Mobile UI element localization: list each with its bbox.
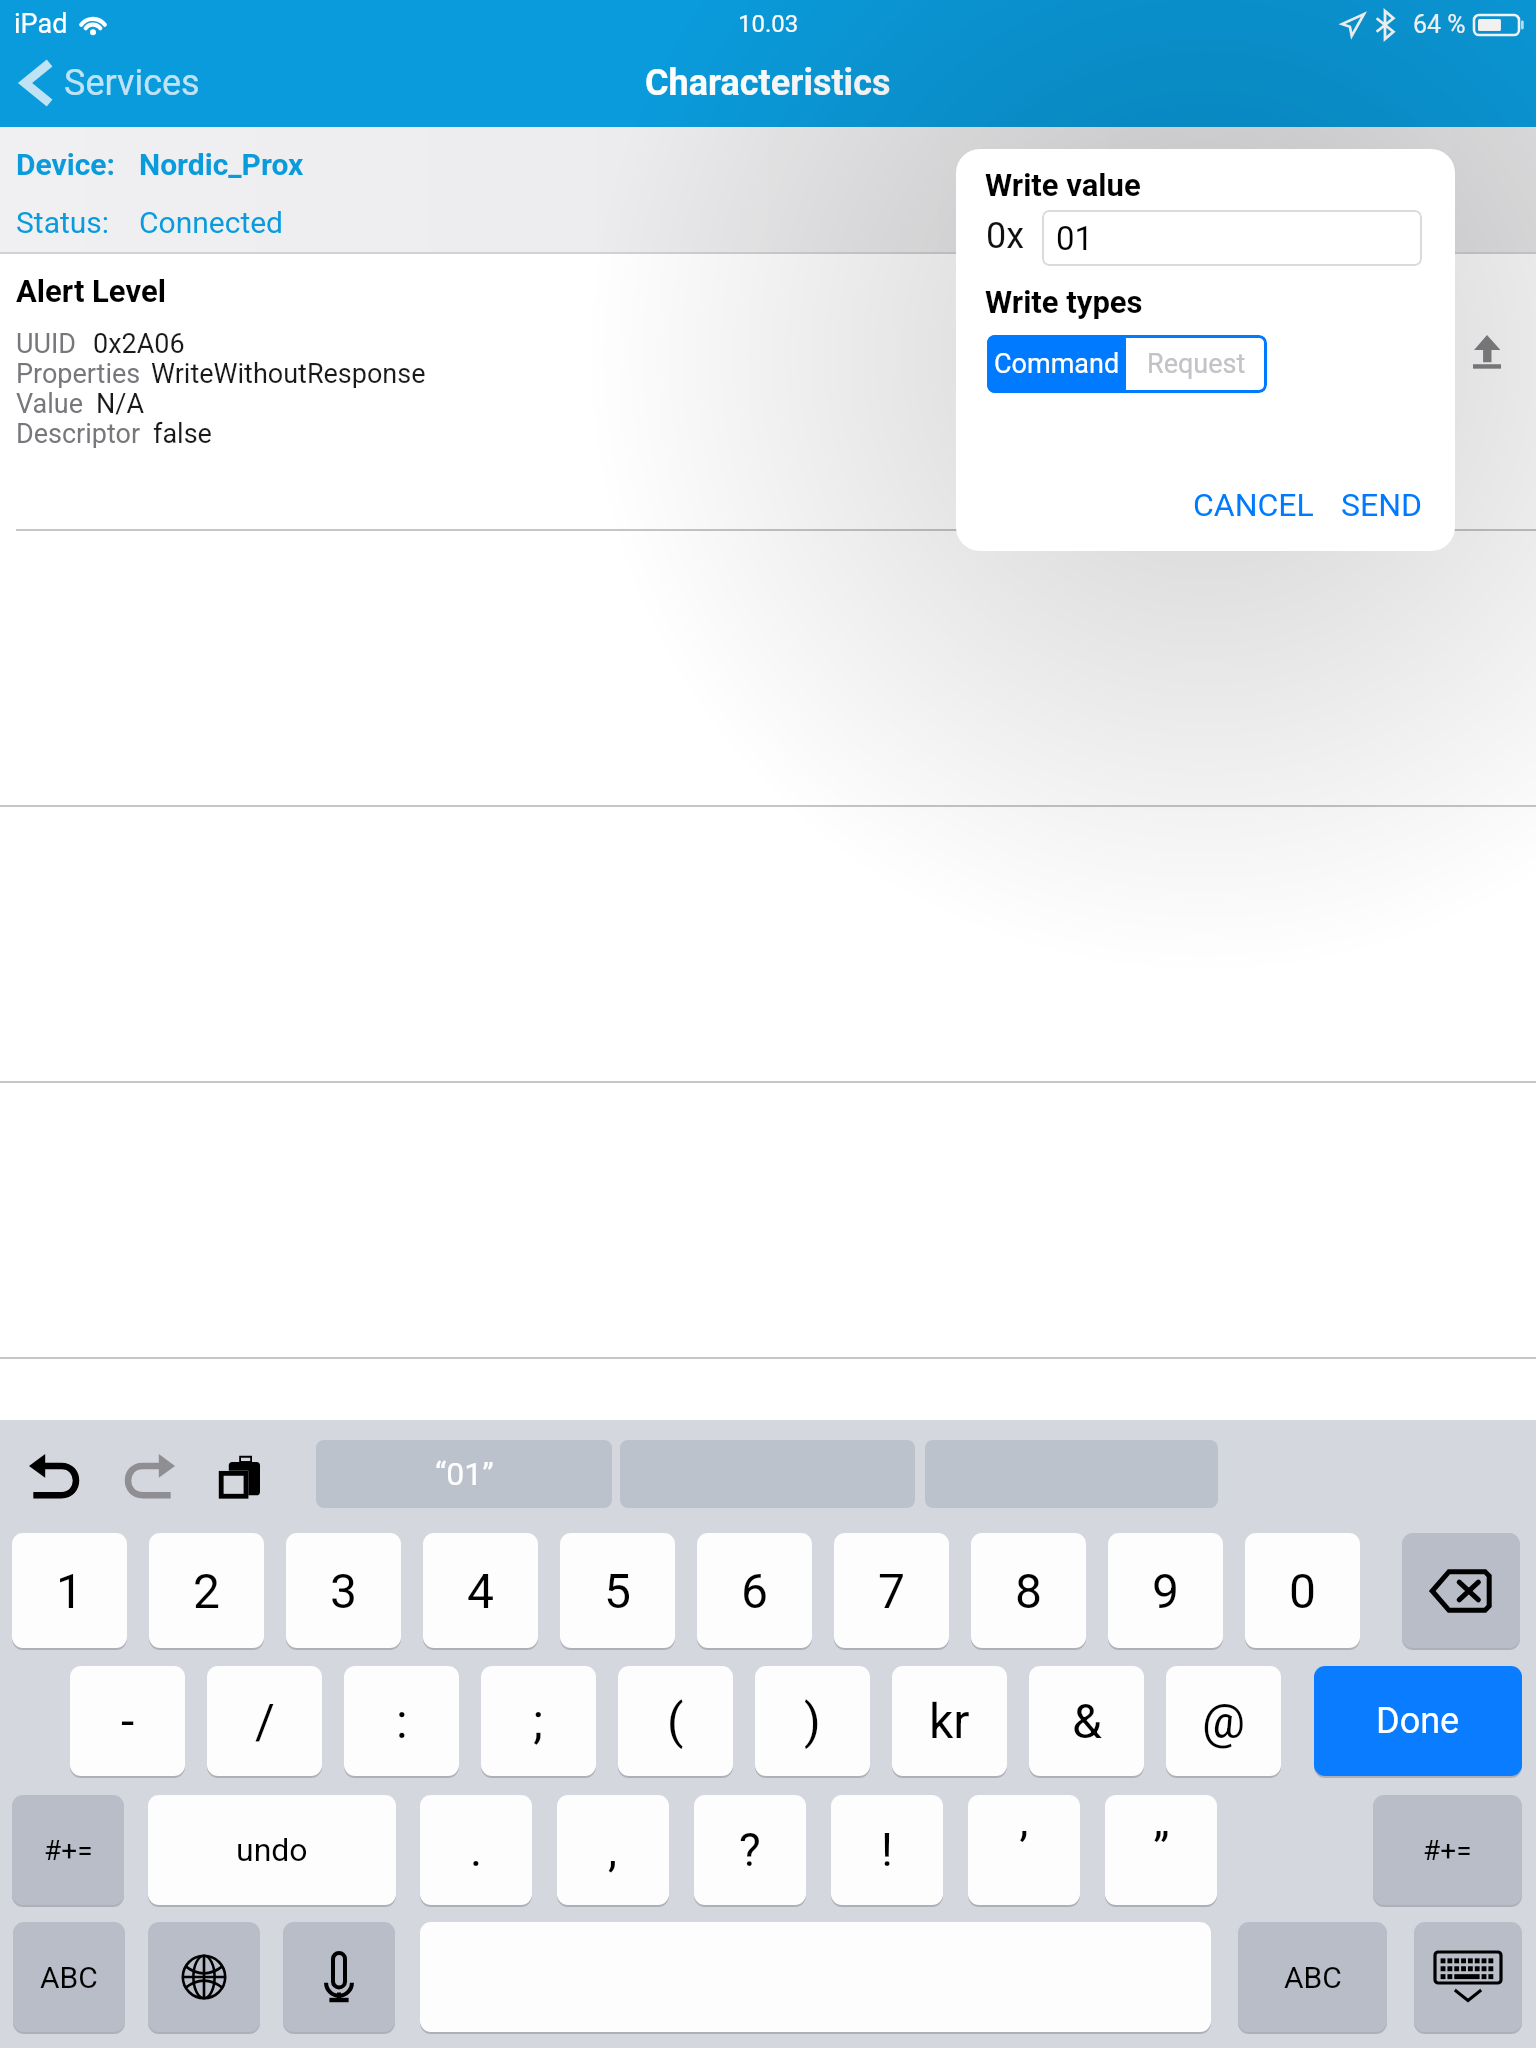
button[interactable]: ABC [13, 1922, 125, 2032]
staticText: ABC [40, 1960, 98, 1995]
button[interactable]: 1 [12, 1533, 127, 1648]
button[interactable]: Command [987, 335, 1126, 393]
staticText: Request [1147, 348, 1246, 380]
button[interactable]: 6 [697, 1533, 812, 1648]
staticText: 4 [467, 1563, 494, 1619]
staticText: Status: [16, 205, 110, 240]
button[interactable]: 2 [149, 1533, 264, 1648]
button[interactable]: #+= [12, 1795, 124, 1905]
staticText: 6 [741, 1563, 768, 1619]
staticText: 8 [1015, 1563, 1042, 1619]
staticText: N/A [96, 388, 145, 418]
staticText: / [255, 1693, 275, 1749]
staticText: #+= [1423, 1834, 1472, 1867]
button[interactable]: Dictation [283, 1922, 395, 2032]
button[interactable]: Redo [114, 1442, 182, 1510]
button[interactable]: Request [1126, 335, 1267, 393]
staticText: undo [236, 1831, 308, 1869]
button[interactable]: 9 [1108, 1533, 1223, 1648]
staticText: - [121, 1693, 135, 1749]
button[interactable]: Hide keyboard [1414, 1922, 1522, 2032]
button[interactable]: #+= [1373, 1795, 1522, 1905]
button[interactable]: ? [694, 1795, 806, 1905]
staticText: . [470, 1823, 483, 1877]
staticText: 01 [1056, 219, 1094, 258]
button[interactable]: Services [22, 58, 200, 108]
button[interactable]: Change language [148, 1922, 260, 2032]
staticText: “01” [435, 1455, 494, 1493]
button[interactable]: / [207, 1666, 322, 1776]
staticText: #+= [44, 1834, 93, 1867]
staticText: : [396, 1693, 408, 1749]
button[interactable]: , [557, 1795, 669, 1905]
staticText: 10.03 [738, 10, 799, 38]
button[interactable]: Write value [1462, 327, 1512, 377]
button[interactable]: 5 [560, 1533, 675, 1648]
staticText: Command [994, 348, 1120, 380]
staticText: CANCEL [1193, 486, 1314, 524]
button[interactable]: Undo [22, 1442, 90, 1510]
button[interactable] [0, 807, 1536, 1083]
staticText: Connected [139, 205, 284, 240]
staticText: & [1072, 1693, 1102, 1749]
staticText: ( [667, 1693, 684, 1749]
button[interactable]: kr [892, 1666, 1007, 1776]
button[interactable]: ; [481, 1666, 596, 1776]
button[interactable]: Delete [1402, 1533, 1520, 1648]
button[interactable]: ” [1105, 1795, 1217, 1905]
button[interactable]: SEND [1331, 478, 1433, 532]
staticText: , [608, 1823, 618, 1877]
staticText: Descriptor [16, 418, 141, 448]
button[interactable]: ABC [1238, 1922, 1387, 2032]
staticText: ; [533, 1693, 544, 1749]
staticText: 3 [330, 1563, 357, 1619]
button[interactable]: ’ [968, 1795, 1080, 1905]
button[interactable]: . [420, 1795, 532, 1905]
staticText: Services [64, 62, 200, 104]
button[interactable]: 0 [1245, 1533, 1360, 1648]
staticText: 0 [1289, 1563, 1316, 1619]
staticText: 64 % [1413, 10, 1466, 39]
button[interactable]: Done [1314, 1666, 1522, 1776]
button[interactable]: 4 [423, 1533, 538, 1648]
staticText: WriteWithoutResponse [151, 358, 426, 388]
staticText: 0x [986, 215, 1025, 257]
button[interactable]: CANCEL [1183, 478, 1324, 532]
button[interactable]: ! [831, 1795, 943, 1905]
button[interactable]: “01” [316, 1440, 612, 1508]
staticText: kr [929, 1693, 970, 1749]
button[interactable]: Paste [206, 1442, 274, 1510]
button[interactable]: & [1029, 1666, 1144, 1776]
staticText: ’ [1019, 1823, 1029, 1877]
staticText: 2 [193, 1563, 220, 1619]
button[interactable] [0, 1083, 1536, 1359]
staticText: @ [1202, 1693, 1246, 1749]
staticText: Done [1376, 1700, 1460, 1742]
button[interactable]: ) [755, 1666, 870, 1776]
staticText: SEND [1341, 486, 1423, 524]
button[interactable]: Alert Level [0, 254, 1536, 531]
staticText: Write types [985, 284, 1143, 320]
button[interactable]: ( [618, 1666, 733, 1776]
button[interactable]: 7 [834, 1533, 949, 1648]
staticText: ABC [1284, 1960, 1342, 1995]
button[interactable] [0, 531, 1536, 807]
button[interactable]: 8 [971, 1533, 1086, 1648]
button[interactable]: - [70, 1666, 185, 1776]
staticText: UUID [16, 328, 77, 358]
staticText: 7 [878, 1563, 905, 1619]
staticText: Characteristics [645, 62, 891, 104]
staticText: 5 [604, 1563, 631, 1619]
staticText: Value [16, 388, 84, 418]
staticText: ? [739, 1823, 761, 1877]
button[interactable]: 3 [286, 1533, 401, 1648]
button[interactable]: @ [1166, 1666, 1281, 1776]
button[interactable]: : [344, 1666, 459, 1776]
button[interactable]: undo [148, 1795, 396, 1905]
staticText: ” [1153, 1823, 1170, 1877]
staticText: false [153, 418, 212, 448]
button[interactable]: 01 [1042, 210, 1422, 266]
